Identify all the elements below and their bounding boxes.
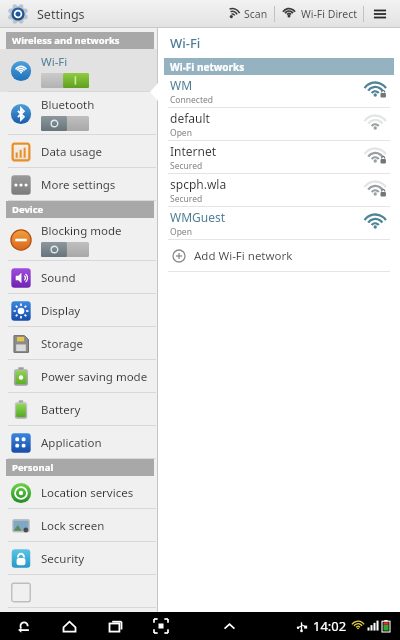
button[interactable]: Location services <box>0 476 158 509</box>
staticText: Settings <box>37 6 85 23</box>
staticText: Add Wi-Fi network <box>194 248 293 264</box>
staticText: Secured <box>170 193 203 205</box>
staticText: Connected <box>170 94 213 106</box>
button[interactable]: WMGuest <box>158 207 400 240</box>
staticText: Sound <box>41 270 76 286</box>
button[interactable]: Storage <box>0 327 158 360</box>
button[interactable]: More settings <box>0 168 158 201</box>
button[interactable]: Security <box>0 542 158 575</box>
staticText: Personal <box>12 461 54 474</box>
staticText: Security <box>41 551 85 567</box>
button[interactable]: Data usage <box>0 135 158 168</box>
button[interactable]: Bluetooth <box>0 92 158 135</box>
staticText: Secured <box>170 160 203 172</box>
button[interactable]: Display <box>0 294 158 327</box>
button[interactable]: Blocking mode <box>0 218 158 261</box>
staticText: Wireless and networks <box>12 34 120 47</box>
button[interactable]: spcph.wla <box>158 174 400 207</box>
staticText: More settings <box>41 177 116 193</box>
staticText: Wi-Fi <box>41 54 68 70</box>
staticText: WMGuest <box>170 209 226 225</box>
staticText: Lock screen <box>41 518 105 534</box>
button[interactable]: Internet <box>158 141 400 174</box>
button[interactable]: Settings <box>8 4 28 24</box>
staticText: Device <box>12 203 44 216</box>
button[interactable]: Battery <box>0 393 158 426</box>
button[interactable]: Back <box>10 613 36 639</box>
button[interactable]: Wi-Fi Direct <box>275 0 363 28</box>
staticText: Data usage <box>41 144 103 160</box>
staticText: Wi-Fi Direct <box>301 7 357 21</box>
staticText: WM <box>170 77 193 93</box>
button[interactable]: Screen capture <box>148 613 174 639</box>
button[interactable]: Add Wi-Fi network <box>158 240 400 272</box>
staticText: Power saving mode <box>41 369 148 385</box>
staticText: Bluetooth <box>41 97 95 113</box>
button[interactable]: Sound <box>0 261 158 294</box>
staticText: Display <box>41 303 81 319</box>
button[interactable]: default <box>158 108 400 141</box>
button[interactable] <box>0 575 158 608</box>
staticText: Battery <box>41 402 81 418</box>
button[interactable]: Power saving mode <box>0 360 158 393</box>
button[interactable]: Wi-Fi <box>0 49 158 92</box>
staticText: Open <box>170 127 192 139</box>
staticText: 14:02 <box>313 617 347 635</box>
staticText: default <box>170 110 210 126</box>
button[interactable]: Application manager <box>0 426 158 459</box>
staticText: Wi-Fi <box>170 34 201 52</box>
button[interactable]: Recent apps <box>102 613 128 639</box>
button[interactable]: WM <box>158 75 400 108</box>
staticText: spcph.wla <box>170 176 227 192</box>
button[interactable]: Show hidden icons <box>216 613 242 639</box>
button[interactable]: More options <box>372 0 388 28</box>
staticText: Wi-Fi networks <box>170 60 245 74</box>
staticText: Open <box>170 226 192 238</box>
staticText: Internet <box>170 143 217 159</box>
staticText: Application manager <box>41 435 152 451</box>
staticText: Scan <box>244 7 268 21</box>
button[interactable]: Home <box>56 613 82 639</box>
staticText: Storage <box>41 336 83 352</box>
button[interactable]: Lock screen <box>0 509 158 542</box>
button[interactable]: Scan <box>218 0 274 28</box>
staticText: Blocking mode <box>41 223 122 239</box>
staticText: Location services <box>41 485 134 501</box>
